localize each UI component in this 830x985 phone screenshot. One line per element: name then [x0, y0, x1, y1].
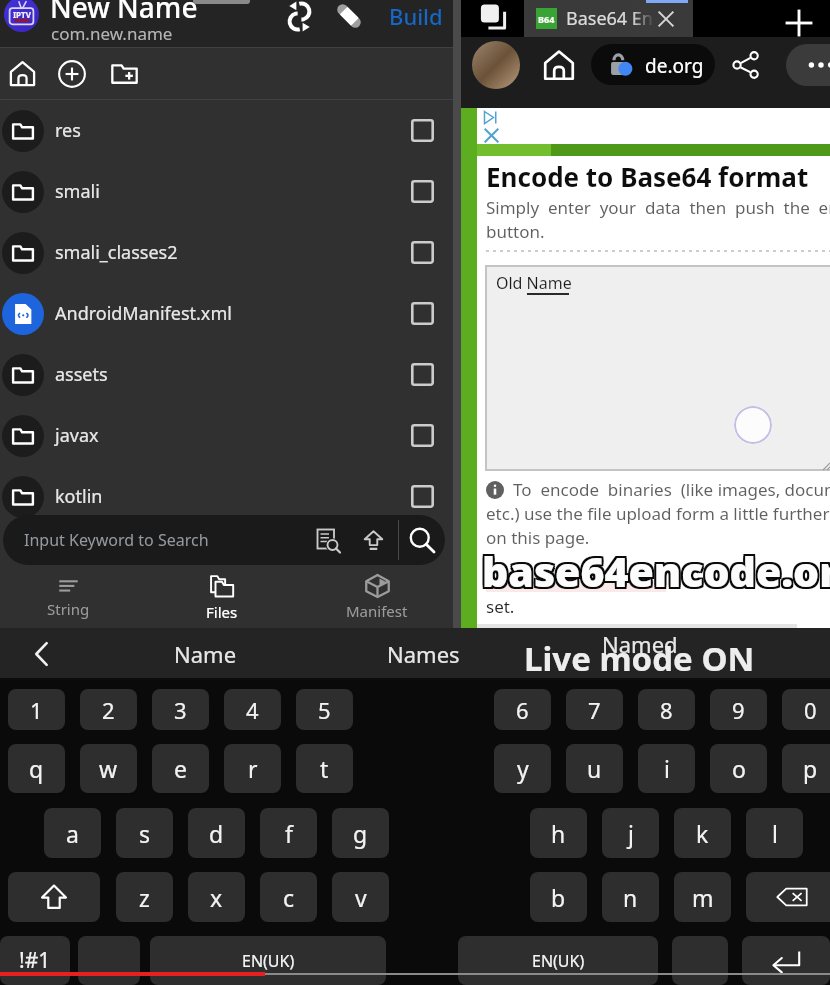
- button[interactable]: Select javax: [411, 424, 434, 447]
- button[interactable]: q: [8, 744, 65, 793]
- staticText: e: [174, 753, 187, 784]
- button[interactable]: !#1: [0, 936, 70, 985]
- button[interactable]: Select res: [411, 119, 434, 142]
- button[interactable]: a: [44, 808, 101, 858]
- staticText: Simply enter your data then push the enc…: [486, 196, 830, 219]
- button[interactable]: 7: [566, 689, 623, 730]
- button[interactable]: g: [332, 808, 389, 858]
- button[interactable]: b: [530, 872, 587, 922]
- button[interactable]: o: [710, 744, 767, 793]
- button[interactable]: e: [152, 744, 209, 793]
- button[interactable]: Refresh: [276, 0, 322, 39]
- button[interactable]: 8: [638, 689, 695, 730]
- button[interactable]: Shift: [8, 872, 100, 922]
- staticText: t: [320, 753, 329, 784]
- button[interactable]: z: [116, 872, 173, 922]
- button[interactable]: l: [746, 808, 803, 858]
- button[interactable]: New tab: [776, 4, 822, 41]
- button[interactable]: d: [188, 808, 245, 858]
- button[interactable]: 4: [224, 689, 281, 730]
- button[interactable]: c: [260, 872, 317, 922]
- button[interactable]: Name: [125, 628, 285, 680]
- button[interactable]: i: [638, 744, 695, 793]
- staticText: !#1: [19, 946, 51, 975]
- button[interactable]: Upload: [351, 515, 395, 565]
- button[interactable]: Manifest: [307, 566, 447, 628]
- button[interactable]: Select kotlin: [411, 485, 434, 508]
- staticText: v: [355, 882, 367, 913]
- button[interactable]: 5: [296, 689, 353, 730]
- button[interactable]: 9: [710, 689, 767, 730]
- button[interactable]: Period: [672, 936, 728, 985]
- staticText: New Name: [50, 0, 198, 26]
- button[interactable]: Names: [343, 628, 503, 680]
- button[interactable]: More options: [786, 44, 830, 86]
- button[interactable]: 1: [8, 689, 65, 730]
- button[interactable]: Search: [399, 515, 445, 565]
- button[interactable]: x: [188, 872, 245, 922]
- staticText: etc.) use the file upload form a little …: [486, 502, 830, 525]
- button[interactable]: Home: [0, 48, 44, 99]
- button[interactable]: 0: [782, 689, 830, 730]
- button[interactable]: j: [602, 808, 659, 858]
- button[interactable]: assets: [0, 344, 453, 405]
- staticText: Name: [174, 639, 237, 669]
- button[interactable]: smali_classes2: [0, 222, 453, 283]
- button[interactable]: New folder: [102, 48, 146, 99]
- button[interactable]: Search in files: [305, 515, 351, 565]
- button[interactable]: Select assets: [411, 363, 434, 386]
- staticText: q: [29, 753, 44, 784]
- button[interactable]: k: [674, 808, 731, 858]
- button[interactable]: Previous suggestions: [14, 628, 70, 680]
- button[interactable]: Build: [384, 0, 448, 39]
- staticText: base64encode.or: [482, 541, 830, 597]
- button[interactable]: t: [296, 744, 353, 793]
- button[interactable]: Tab switcher: [467, 0, 523, 37]
- staticText: j: [628, 818, 634, 849]
- staticText: smali_classes2: [55, 240, 411, 265]
- button[interactable]: Add: [50, 48, 94, 99]
- button[interactable]: y: [494, 744, 551, 793]
- button[interactable]: EN(UK): [150, 936, 386, 985]
- button[interactable]: String: [0, 566, 138, 628]
- button[interactable]: Named: [560, 628, 720, 680]
- button[interactable]: Share: [722, 41, 770, 89]
- button[interactable]: h: [530, 808, 587, 858]
- staticText: 3: [174, 695, 187, 725]
- button[interactable]: r: [224, 744, 281, 793]
- button[interactable]: B64: [524, 0, 693, 37]
- button[interactable]: kotlin: [0, 466, 453, 527]
- button[interactable]: s: [116, 808, 173, 858]
- button[interactable]: Backspace: [746, 872, 830, 922]
- button[interactable]: Enter: [742, 936, 830, 985]
- staticText: Input Keyword to Search: [24, 529, 209, 551]
- button[interactable]: v: [332, 872, 389, 922]
- staticText: on this page.: [486, 526, 590, 549]
- button[interactable]: Home: [535, 41, 583, 89]
- button[interactable]: Profile: [472, 41, 520, 89]
- button[interactable]: u: [566, 744, 623, 793]
- button[interactable]: p: [782, 744, 830, 793]
- button[interactable]: EN(UK): [458, 936, 658, 985]
- button[interactable]: res: [0, 100, 453, 161]
- button[interactable]: 6: [494, 689, 551, 730]
- button[interactable]: smali: [0, 161, 453, 222]
- button[interactable]: Select AndroidManifest.xml: [411, 302, 434, 325]
- button[interactable]: Select smali: [411, 180, 434, 203]
- button[interactable]: f: [260, 808, 317, 858]
- button[interactable]: 3: [152, 689, 209, 730]
- button[interactable]: m: [674, 872, 731, 922]
- button[interactable]: Close tab: [656, 9, 676, 29]
- button[interactable]: de.org: [591, 44, 715, 85]
- button[interactable]: Edit: [326, 0, 372, 39]
- button[interactable]: w: [80, 744, 137, 793]
- button[interactable]: n: [602, 872, 659, 922]
- button[interactable]: javax: [0, 405, 453, 466]
- button[interactable]: Select smali_classes2: [411, 241, 434, 264]
- button[interactable]: 2: [80, 689, 137, 730]
- button[interactable]: Comma: [78, 936, 140, 985]
- button[interactable]: Files: [152, 566, 292, 628]
- staticText: AndroidManifest.xml: [55, 301, 411, 326]
- button[interactable]: AndroidManifest.xml: [0, 283, 453, 344]
- staticText: Old Name: [496, 272, 572, 294]
